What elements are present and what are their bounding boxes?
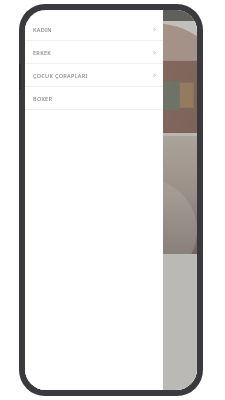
staticText: KADIN (33, 26, 52, 33)
button[interactable]: Ne aramıştınız? (25, 45, 197, 60)
button[interactable]: ÇOCUK ÇORAPLARI (25, 64, 163, 86)
staticText: ÇORAP (29, 95, 81, 115)
button[interactable]: KADIN (25, 18, 163, 40)
button[interactable]: BOXER (25, 87, 163, 109)
staticText: ÇOCUK ÇORAPLARI (33, 72, 88, 79)
button[interactable] (25, 136, 197, 254)
button[interactable]: YENİ (25, 61, 197, 133)
button[interactable]: Menu (28, 26, 42, 40)
button[interactable]: ERKEK (25, 41, 163, 63)
staticText: ERKEK (33, 49, 52, 56)
button[interactable]: Logo (100, 23, 134, 43)
staticText: BOXER (33, 95, 53, 102)
staticText: YENİ (29, 73, 66, 93)
staticText: Ne aramıştınız? (37, 49, 73, 56)
